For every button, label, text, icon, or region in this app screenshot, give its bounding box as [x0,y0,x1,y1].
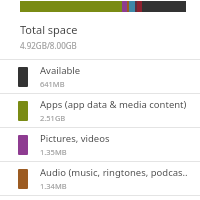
staticText: 1.34MB [40,181,67,191]
staticText: 1.35MB [40,147,67,157]
staticText: 641MB [40,79,65,89]
staticText: Pictures, videos [40,132,110,145]
staticText: 4.92GB/8.00GB [20,40,77,51]
button[interactable]: Apps (app data & media content) [0,94,200,127]
staticText: Apps (app data & media content) [40,98,187,111]
staticText: 2.51GB [40,113,66,123]
button[interactable]: Pictures, videos [0,128,200,161]
staticText: Total space [20,22,78,37]
button[interactable]: Audio (music, ringtones, podcas.. [0,162,200,195]
staticText: Audio (music, ringtones, podcas.. [40,166,188,179]
staticText: Available [40,64,81,77]
button[interactable]: Available [0,60,200,93]
